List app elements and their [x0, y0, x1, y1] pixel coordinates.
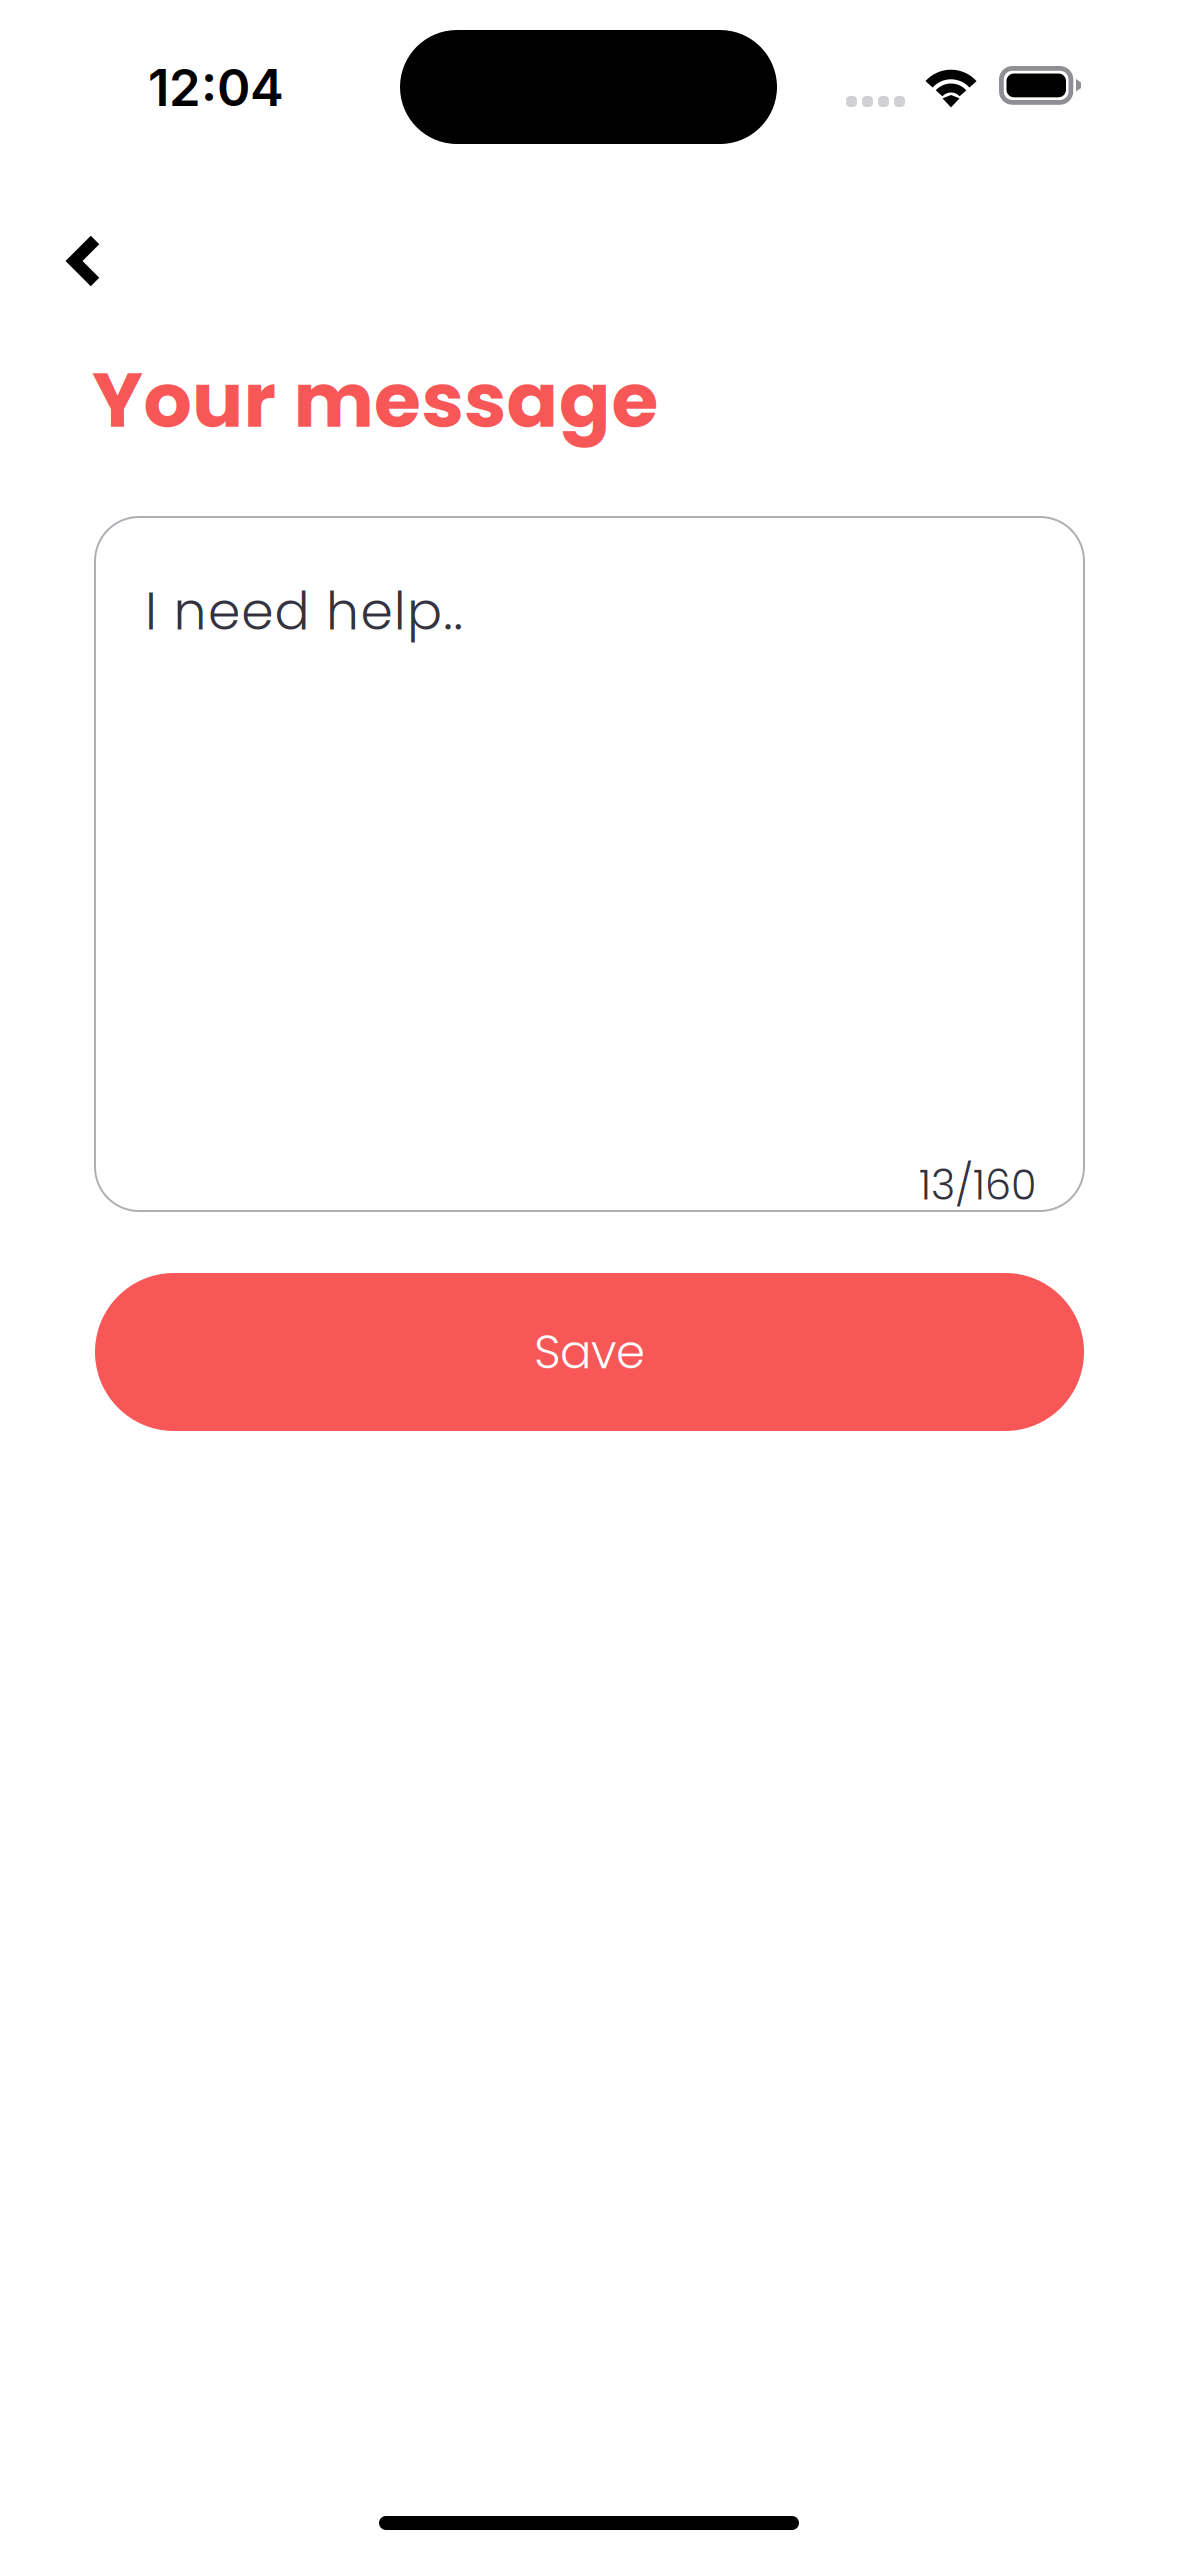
button[interactable]: Save: [95, 1273, 1084, 1431]
staticText: Save: [534, 1319, 645, 1385]
staticText: Your message: [92, 347, 658, 453]
staticText: I need help..: [145, 575, 463, 648]
staticText: 13/160: [919, 1156, 1036, 1214]
staticText: 12:04: [148, 57, 284, 118]
button[interactable]: Back: [32, 198, 138, 324]
